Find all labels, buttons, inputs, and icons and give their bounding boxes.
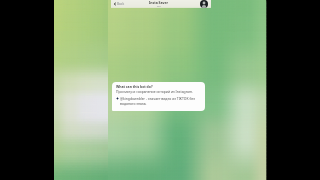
button[interactable]: Profile (200, 0, 208, 8)
staticText: @kingdownlder - скачает видео из TIKTOK … (120, 96, 202, 106)
button[interactable]: Back (111, 0, 126, 8)
staticText: Insta Saver (149, 0, 168, 5)
staticText: bot (157, 5, 161, 8)
staticText: Back (117, 2, 125, 6)
button[interactable]: What can this bot do? (112, 82, 205, 111)
staticText: What can this bot do? (116, 84, 153, 89)
staticText: Просмотр и сохранение историй из Instagr… (116, 89, 193, 94)
